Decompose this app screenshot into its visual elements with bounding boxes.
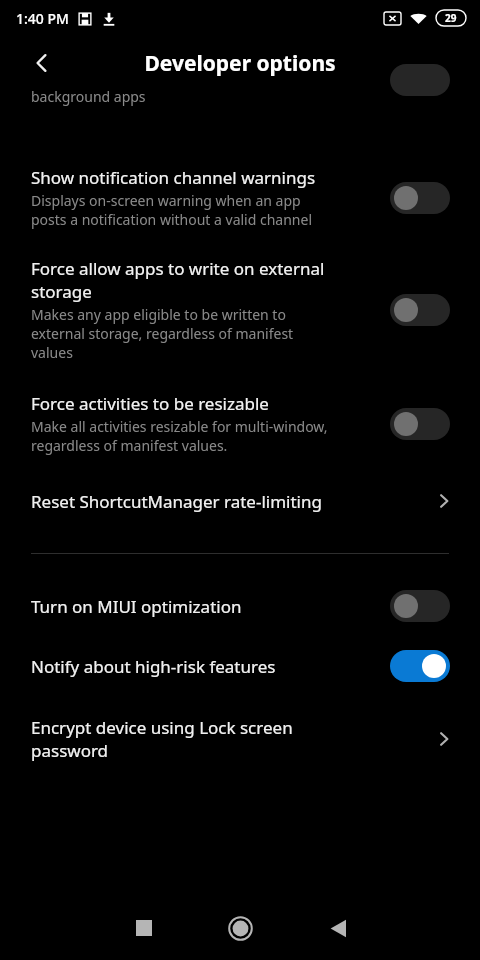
button[interactable]: On xyxy=(390,650,450,682)
staticText: Makes any app eligible to be written to … xyxy=(31,305,294,362)
button[interactable]: Recent apps xyxy=(120,904,168,952)
staticText: Displays on-screen warning when an app p… xyxy=(31,191,313,229)
button[interactable]: Show notification channel warnings xyxy=(0,132,480,239)
staticText: Turn on MIUI optimization xyxy=(31,595,242,618)
button[interactable]: Turn on MIUI optimization xyxy=(0,576,480,636)
staticText: 29 xyxy=(445,11,457,25)
button[interactable] xyxy=(0,90,480,132)
staticText: Show notification channel warnings xyxy=(31,166,316,189)
button[interactable]: Off xyxy=(390,182,450,214)
button[interactable]: Back xyxy=(314,904,362,952)
staticText: Force activities to be resizable xyxy=(31,392,269,415)
button[interactable]: Off xyxy=(390,590,450,622)
button[interactable]: Notify about high-risk features xyxy=(0,636,480,696)
button[interactable]: Off xyxy=(390,408,450,440)
staticText: Encrypt device using Lock screen passwor… xyxy=(31,716,418,762)
staticText: Developer options xyxy=(144,49,336,78)
staticText: background apps xyxy=(31,87,146,106)
staticText: Notify about high-risk features xyxy=(31,655,276,678)
button[interactable]: Back xyxy=(20,41,64,85)
button[interactable]: Encrypt device using Lock screen passwor… xyxy=(0,696,480,782)
staticText: Make all activities resizable for multi-… xyxy=(31,417,328,455)
staticText: 1:40 PM xyxy=(16,9,69,28)
button[interactable]: Force allow apps to write on external st… xyxy=(0,239,480,372)
staticText: Reset ShortcutManager rate-limiting xyxy=(31,490,418,513)
button[interactable]: Off xyxy=(390,294,450,326)
button[interactable]: Reset ShortcutManager rate-limiting xyxy=(0,467,480,535)
button[interactable]: Force activities to be resizable xyxy=(0,372,480,467)
staticText: Force allow apps to write on external st… xyxy=(31,257,325,303)
button[interactable]: Home xyxy=(216,904,264,952)
